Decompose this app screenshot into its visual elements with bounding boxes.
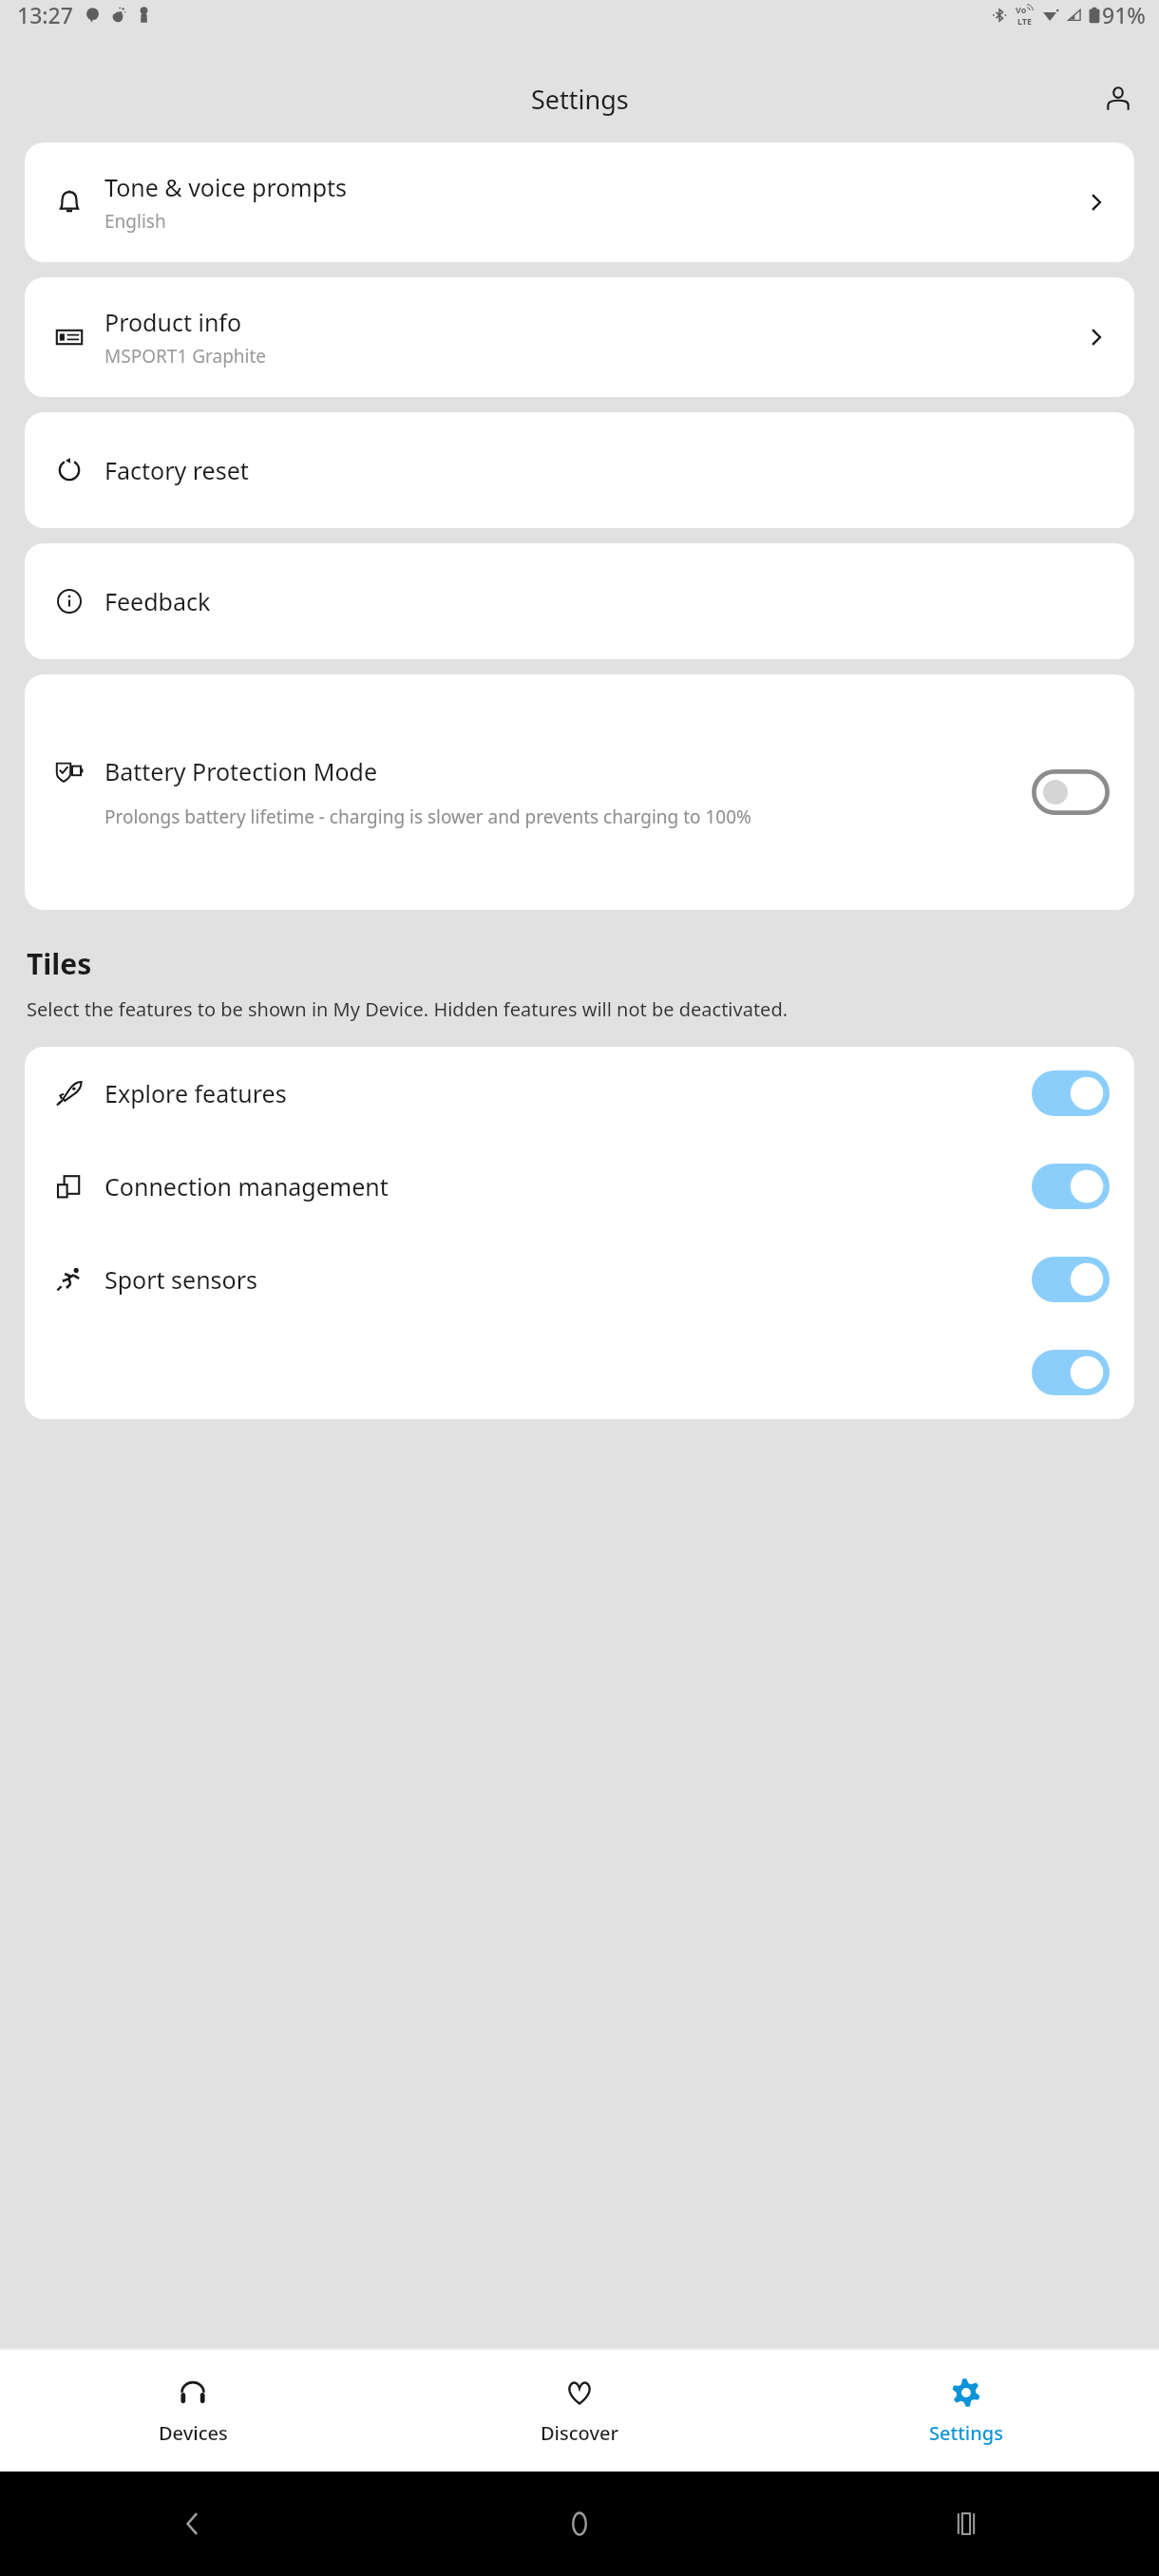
staticText: Discover [541, 2420, 618, 2446]
staticText: MSPORT1 Graphite [104, 344, 267, 369]
staticText: Product info [104, 306, 242, 338]
staticText: Devices [159, 2420, 228, 2446]
staticText: Connection management [104, 1170, 1032, 1203]
button[interactable]: Discover [386, 2367, 772, 2455]
button[interactable]: Tone & voice prompts [25, 142, 1134, 262]
staticText: Settings [531, 82, 629, 117]
staticText: Tiles [27, 944, 92, 983]
staticText: LTE [1017, 15, 1033, 27]
staticText: Explore features [104, 1077, 1032, 1109]
staticText: Battery Protection Mode [104, 755, 378, 787]
button[interactable]: On [1032, 1257, 1110, 1302]
staticText: 13:27 [17, 0, 73, 29]
button[interactable]: Battery Protection Mode [25, 674, 1134, 910]
staticText: Prolongs battery lifetime - charging is … [104, 805, 751, 829]
staticText: Vo [1016, 4, 1027, 15]
button[interactable]: Feedback [25, 543, 1134, 659]
staticText: Select the features to be shown in My De… [27, 996, 788, 1022]
button[interactable]: Sport sensors [25, 1233, 1134, 1326]
button[interactable]: On [1032, 1164, 1110, 1209]
button[interactable]: On [25, 1326, 1134, 1419]
button[interactable]: Product info [25, 277, 1134, 397]
staticText: English [104, 209, 166, 234]
staticText: Tone & voice prompts [104, 171, 348, 203]
button[interactable]: Settings [772, 2367, 1159, 2455]
staticText: Sport sensors [104, 1263, 1032, 1296]
button[interactable]: Devices [0, 2367, 386, 2455]
button[interactable]: Connection management [25, 1140, 1134, 1233]
button[interactable]: On [1032, 1350, 1110, 1395]
button[interactable]: Factory reset [25, 412, 1134, 528]
button[interactable]: On [1032, 1070, 1110, 1116]
button[interactable]: Off [1032, 769, 1110, 815]
button[interactable]: Account [1096, 77, 1140, 121]
staticText: 91% [1102, 0, 1146, 29]
staticText: Settings [929, 2420, 1003, 2446]
staticText: Feedback [104, 585, 1110, 617]
staticText: Factory reset [104, 454, 1110, 486]
button[interactable]: Explore features [25, 1047, 1134, 1140]
